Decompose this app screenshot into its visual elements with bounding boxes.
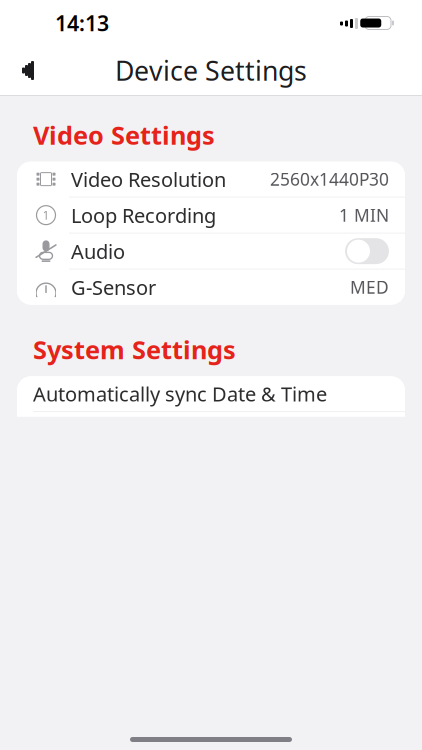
staticText: Video Resolution <box>71 166 226 192</box>
staticText: 1 <box>42 207 49 223</box>
staticText: Loop Recording <box>71 202 216 228</box>
staticText: Automatically sync Date & Time <box>33 380 327 407</box>
staticText: Audio <box>71 238 125 264</box>
staticText: Video Settings <box>33 118 215 152</box>
staticText: MED <box>350 276 389 299</box>
button[interactable]: 1 <box>17 198 405 233</box>
staticText: 14:13 <box>55 9 109 37</box>
button[interactable]: G-Sensor <box>17 270 405 305</box>
staticText: System Settings <box>33 333 236 366</box>
button[interactable]: Back <box>6 48 50 92</box>
button[interactable]: Automatically sync Date & Time <box>17 376 405 411</box>
staticText: 2560x1440P30 <box>270 168 389 191</box>
staticText: G-Sensor <box>71 274 156 300</box>
staticText: Device Settings <box>115 53 307 88</box>
button[interactable]: Video Resolution <box>17 162 405 197</box>
staticText: 1 MIN <box>339 204 389 227</box>
button[interactable]: Audio <box>17 234 405 269</box>
button[interactable]: SD Card free space <box>17 412 405 447</box>
